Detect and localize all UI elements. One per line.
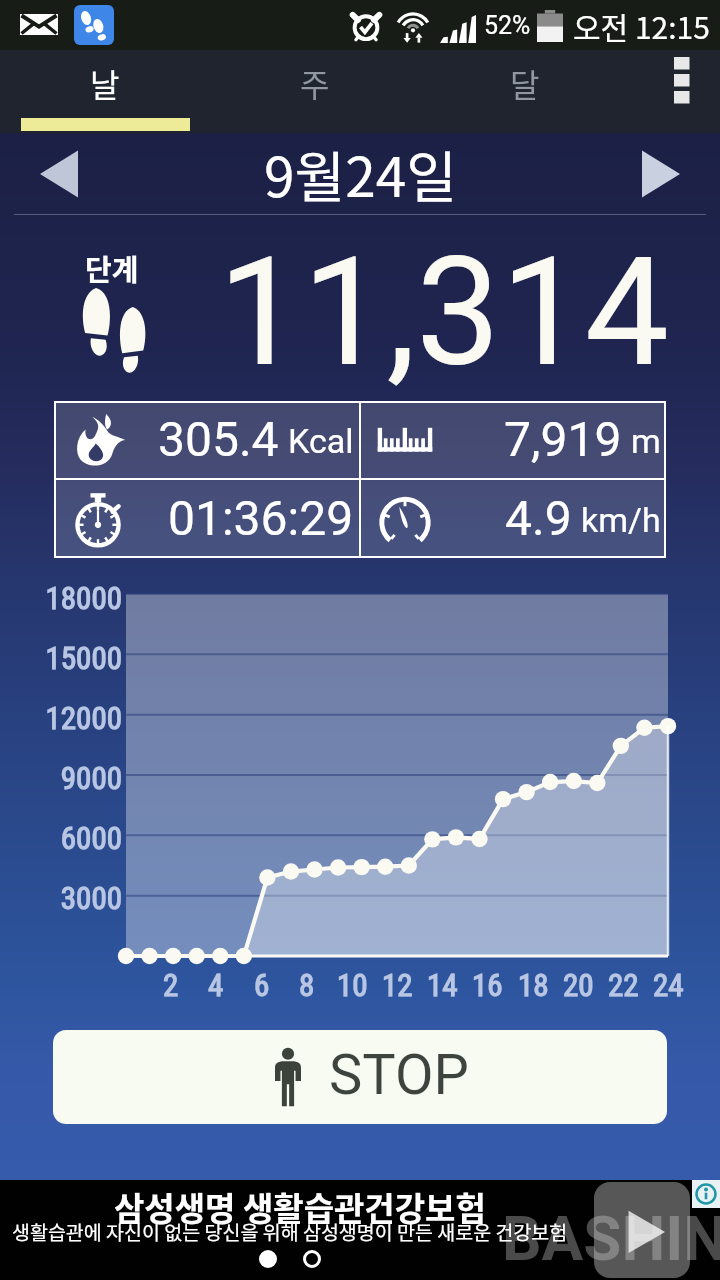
staticText: 달 — [510, 60, 540, 106]
staticText: 삼성생명 생활습관건강보험 — [114, 1183, 486, 1231]
staticText: 주 — [300, 60, 330, 106]
button[interactable]: Previous day — [32, 147, 86, 201]
staticText: km/h — [581, 500, 661, 540]
button[interactable]: STOP — [53, 1030, 667, 1124]
button[interactable]: Ad info — [692, 1180, 720, 1208]
staticText: 14 — [427, 967, 458, 1003]
button[interactable]: 4.9 — [361, 480, 666, 558]
staticText: 2 — [163, 967, 179, 1003]
staticText: 15000 — [4, 640, 122, 676]
staticText: Kcal — [288, 421, 354, 461]
button[interactable]: 305.4 — [54, 401, 359, 478]
staticText: 3000 — [4, 880, 122, 916]
staticText: STOP — [329, 1042, 469, 1108]
staticText: 날 — [90, 60, 120, 106]
staticText: 9000 — [4, 760, 122, 796]
staticText: 생활습관에 자신이 없는 당신을 위해 삼성생명이 만든 새로운 건강보험 — [12, 1217, 568, 1245]
staticText: 6000 — [4, 820, 122, 856]
staticText: 24 — [653, 967, 684, 1003]
button[interactable]: BASHIN — [0, 1180, 720, 1280]
staticText: 4.9 — [505, 490, 572, 546]
staticText: 12 — [382, 967, 413, 1003]
button[interactable]: 달 — [420, 50, 630, 133]
staticText: 16 — [472, 967, 503, 1003]
staticText: m — [631, 421, 661, 461]
staticText: 9월24일 — [264, 133, 457, 213]
staticText: 18000 — [4, 580, 122, 616]
button[interactable]: 날 — [0, 50, 210, 133]
staticText: 4 — [208, 967, 224, 1003]
staticText: 20 — [563, 967, 594, 1003]
button[interactable]: 주 — [210, 50, 420, 133]
staticText: 단계 — [85, 247, 139, 289]
staticText: BASHIN — [502, 1202, 720, 1275]
staticText: 10 — [337, 967, 368, 1003]
button[interactable]: Next day — [634, 147, 688, 201]
staticText: 오전 12:15 — [573, 4, 710, 47]
staticText: 01:36:29 — [168, 490, 354, 546]
staticText: 305.4 — [158, 411, 279, 467]
staticText: 11,314 — [218, 225, 670, 401]
staticText: 18 — [518, 967, 549, 1003]
button[interactable]: 7,919 — [361, 401, 666, 478]
staticText: 22 — [608, 967, 639, 1003]
staticText: 7,919 — [504, 411, 622, 467]
button[interactable]: More options — [630, 50, 720, 133]
button[interactable]: 01:36:29 — [54, 480, 359, 558]
staticText: 6 — [254, 967, 270, 1003]
staticText: 52% — [484, 11, 531, 40]
staticText: 8 — [299, 967, 315, 1003]
staticText: 12000 — [4, 700, 122, 736]
